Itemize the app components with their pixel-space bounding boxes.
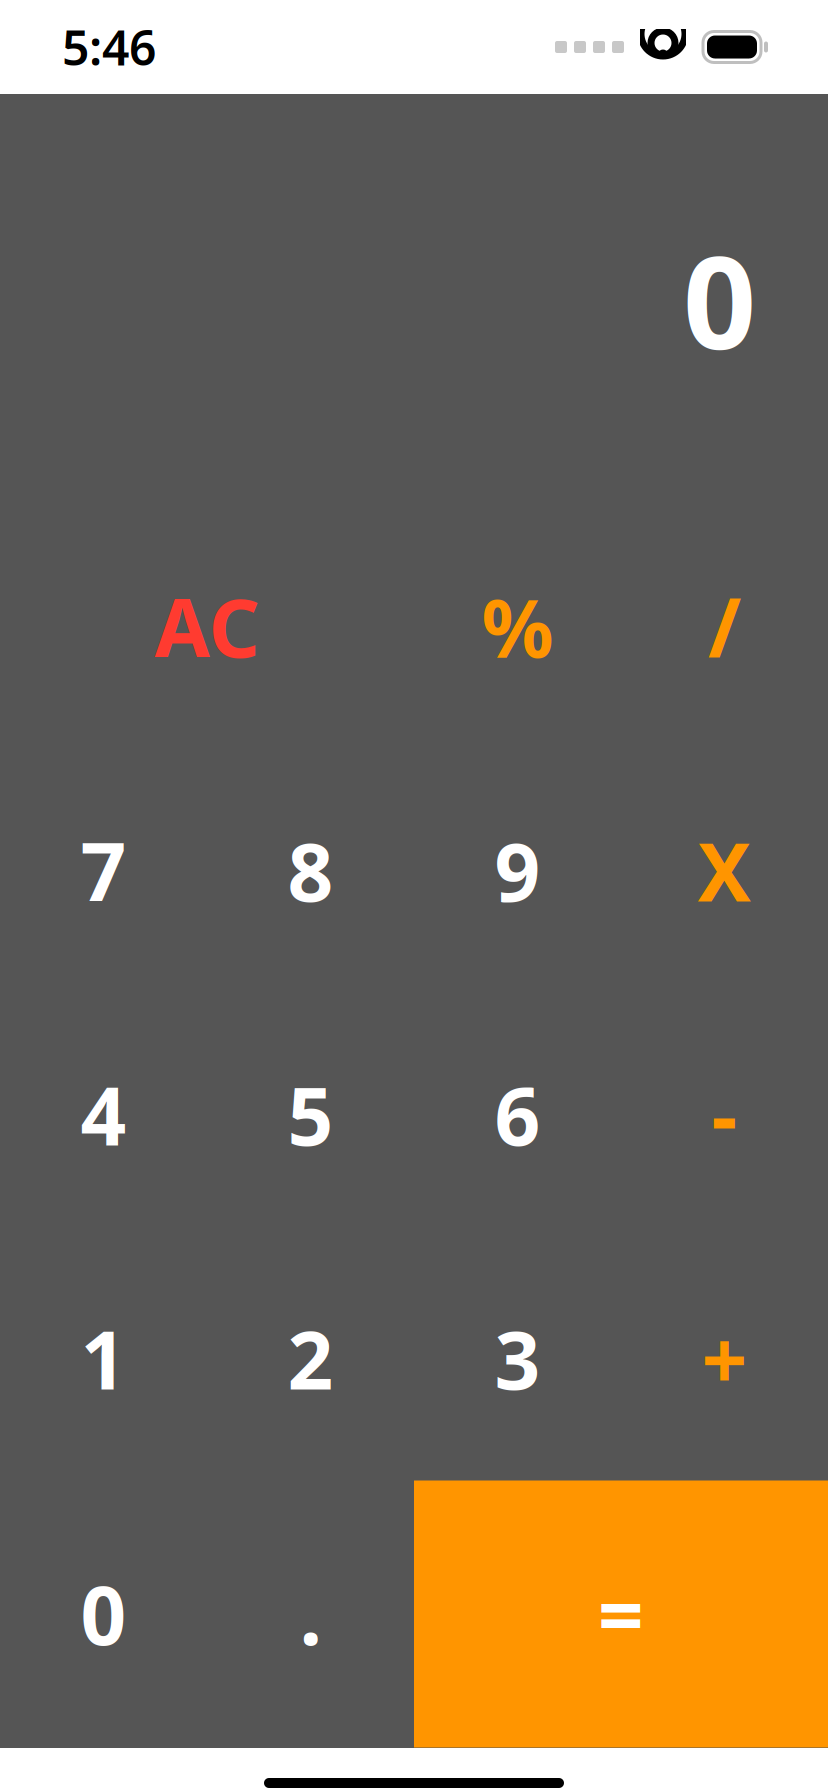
button[interactable]: . (207, 1480, 414, 1747)
staticText: - (711, 1061, 737, 1168)
staticText: 8 (287, 817, 333, 924)
staticText: . (299, 1561, 321, 1667)
button[interactable]: 2 (207, 1236, 414, 1480)
staticText: 4 (80, 1061, 126, 1168)
staticText: 7 (80, 817, 126, 924)
staticText: 3 (494, 1305, 540, 1412)
button[interactable]: 0 (0, 1480, 207, 1747)
staticText: AC (154, 573, 259, 680)
staticText: % (481, 573, 553, 680)
staticText: 2 (287, 1305, 333, 1412)
button[interactable]: AC (0, 504, 414, 748)
button[interactable]: 8 (207, 748, 414, 992)
staticText: 6 (494, 1061, 540, 1168)
button[interactable]: - (621, 992, 828, 1236)
staticText: 5:46 (62, 15, 156, 79)
staticText: = (598, 1561, 644, 1667)
staticText: X (697, 817, 751, 924)
button[interactable]: 6 (414, 992, 621, 1236)
button[interactable]: 9 (414, 748, 621, 992)
staticText: + (701, 1305, 747, 1412)
button[interactable]: 7 (0, 748, 207, 992)
button[interactable]: 1 (0, 1236, 207, 1480)
button[interactable]: + (621, 1236, 828, 1480)
button[interactable]: X (621, 748, 828, 992)
staticText: 1 (80, 1305, 126, 1412)
button[interactable]: 5 (207, 992, 414, 1236)
button[interactable]: % (414, 504, 621, 748)
button[interactable]: 4 (0, 992, 207, 1236)
staticText: / (708, 573, 741, 680)
staticText: 0 (683, 214, 756, 384)
button[interactable]: = (414, 1480, 828, 1747)
button[interactable]: / (621, 504, 828, 748)
staticText: 0 (80, 1561, 126, 1667)
staticText: 5 (287, 1061, 333, 1168)
staticText: 9 (494, 817, 540, 924)
button[interactable]: 3 (414, 1236, 621, 1480)
